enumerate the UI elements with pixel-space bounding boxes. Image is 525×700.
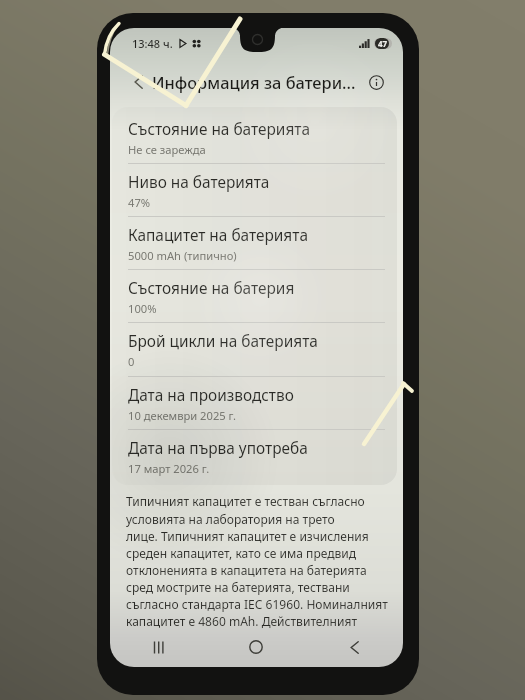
staticText: Дата на първа употреба <box>128 438 308 459</box>
staticText: Капацитет на батерията <box>128 225 308 246</box>
staticText: 13:48 ч. <box>132 36 173 51</box>
staticText: 100% <box>128 301 157 316</box>
staticText: Дата на производство <box>128 385 294 406</box>
staticText: Типичният капацитет е тестван съгласно у… <box>126 493 388 629</box>
staticText: 10 декември 2025 г. <box>128 408 237 423</box>
staticText: Състояние на батерия <box>128 278 295 299</box>
staticText: Ниво на батерията <box>128 172 270 193</box>
button[interactable]: Състояние на батерията <box>112 111 397 164</box>
staticText: Информация за батери... <box>152 71 356 93</box>
staticText: Не се зарежда <box>128 142 206 157</box>
staticText: Състояние на батерията <box>128 119 310 140</box>
staticText: 47% <box>128 195 151 210</box>
button[interactable]: Back <box>305 627 403 667</box>
button[interactable]: Home <box>207 627 305 667</box>
staticText: 47 <box>378 38 388 49</box>
staticText: 0 <box>128 354 135 369</box>
button[interactable]: Брой цикли на батерията <box>112 323 397 376</box>
button[interactable]: Recents <box>110 627 207 667</box>
button[interactable]: Ниво на батерията <box>112 164 397 217</box>
button[interactable]: Info <box>365 71 387 93</box>
button[interactable]: Капацитет на батерията <box>112 217 397 270</box>
button[interactable]: Състояние на батерия <box>112 270 397 323</box>
staticText: 17 март 2026 г. <box>128 461 210 476</box>
button[interactable]: Back <box>127 71 149 93</box>
button[interactable]: Дата на производство <box>112 377 397 430</box>
staticText: 5000 mAh (типично) <box>128 248 237 263</box>
staticText: Брой цикли на батерията <box>128 331 318 352</box>
button[interactable]: Дата на първа употреба <box>112 430 397 483</box>
